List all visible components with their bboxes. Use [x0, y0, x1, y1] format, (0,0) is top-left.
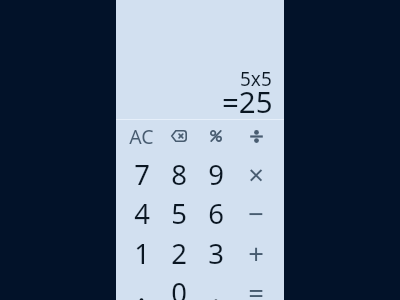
staticText: =25: [222, 81, 273, 121]
button[interactable]: +: [234, 234, 278, 273]
other: Divide: [250, 130, 263, 143]
button[interactable]: 9: [197, 155, 234, 194]
staticText: 5: [171, 195, 187, 232]
button[interactable]: −: [234, 194, 278, 233]
staticText: +: [248, 235, 264, 272]
staticText: 7: [134, 156, 150, 193]
button[interactable]: 4: [123, 194, 160, 233]
staticText: .: [212, 274, 220, 300]
button[interactable]: Divide: [234, 117, 278, 155]
staticText: 3: [208, 235, 224, 272]
button[interactable]: 3: [197, 234, 234, 273]
button[interactable]: =: [234, 273, 278, 300]
staticText: 9: [208, 156, 224, 193]
button[interactable]: 5: [160, 194, 197, 233]
staticText: 5x5: [240, 66, 272, 92]
staticText: AC: [129, 123, 154, 150]
button[interactable]: 1: [123, 234, 160, 273]
button[interactable]: 6: [197, 194, 234, 233]
other: Backspace: [171, 130, 187, 142]
button[interactable]: ×: [234, 155, 278, 194]
staticText: 4: [134, 195, 150, 232]
button[interactable]: Percent: [197, 117, 234, 155]
staticText: 6: [208, 195, 224, 232]
button[interactable]: 0: [160, 273, 197, 300]
button[interactable]: Backspace: [160, 117, 197, 155]
button[interactable]: Toggle sign: [123, 273, 160, 300]
staticText: 8: [171, 156, 187, 193]
staticText: 2: [171, 235, 187, 272]
staticText: =: [248, 274, 264, 300]
staticText: 0: [171, 274, 187, 300]
staticText: ×: [248, 156, 264, 193]
button[interactable]: 7: [123, 155, 160, 194]
button[interactable]: 2: [160, 234, 197, 273]
staticText: 1: [134, 235, 150, 272]
button[interactable]: AC: [123, 117, 160, 155]
staticText: −: [248, 195, 264, 232]
other: Toggle sign: [135, 283, 148, 300]
button[interactable]: 8: [160, 155, 197, 194]
other: Percent: [210, 130, 222, 142]
button[interactable]: .: [197, 273, 234, 300]
